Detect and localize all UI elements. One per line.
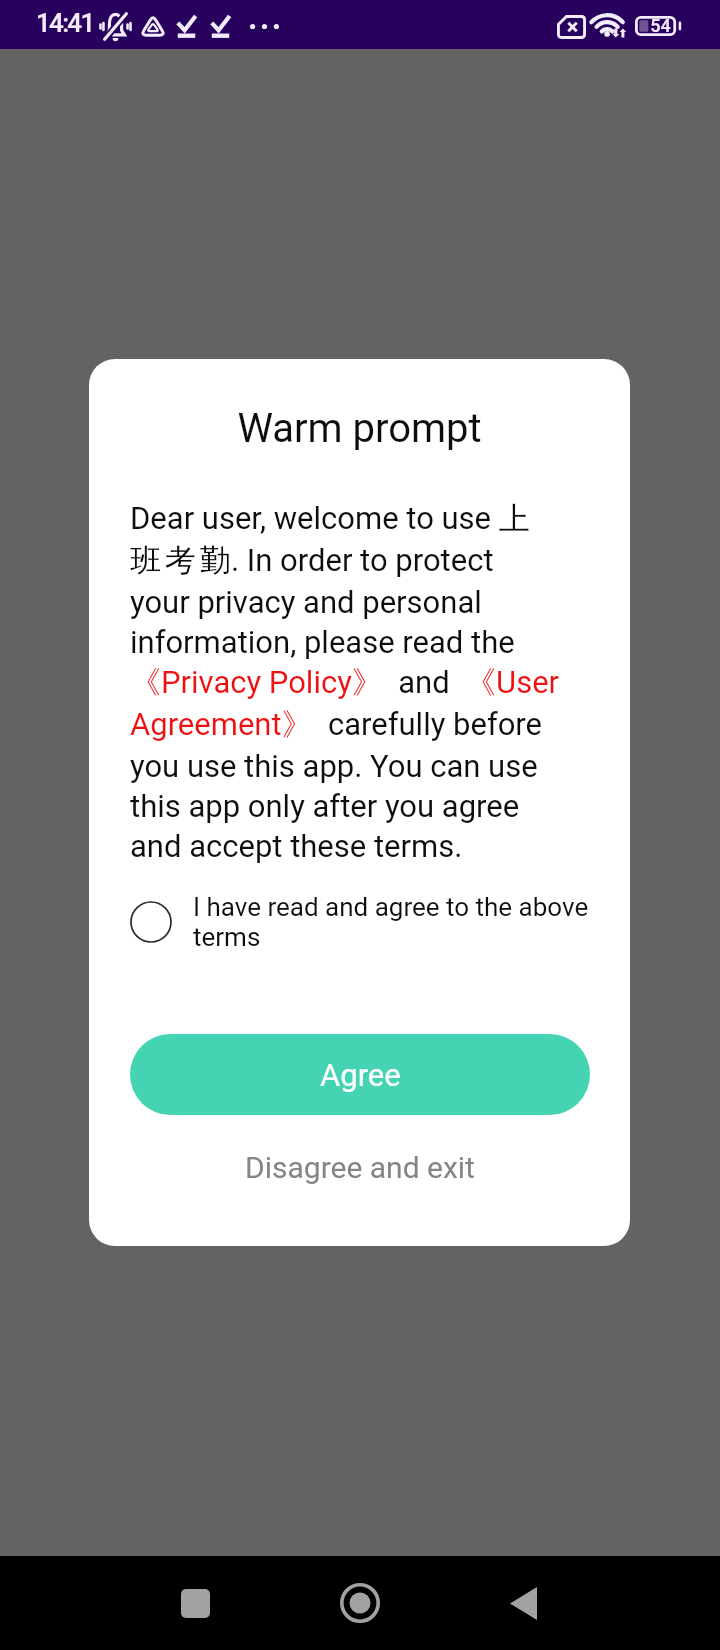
staticText: Disagree and exit bbox=[245, 1150, 475, 1185]
staticText: I have read and agree to the above terms bbox=[193, 892, 600, 952]
button[interactable]: I have read and agree to the above terms bbox=[130, 886, 600, 958]
button[interactable]: Agree bbox=[130, 1034, 590, 1115]
button[interactable]: Disagree and exit bbox=[89, 1129, 630, 1205]
staticText: Agree bbox=[320, 1057, 401, 1093]
staticText: Dear user, welcome to use 上班考勤. In order… bbox=[130, 499, 560, 864]
staticText: Warm prompt bbox=[89, 405, 630, 452]
button[interactable]: Home bbox=[310, 1556, 410, 1650]
staticText: 54 bbox=[644, 15, 677, 36]
button[interactable]: Recent apps bbox=[145, 1556, 245, 1650]
staticText: 14:41 bbox=[36, 8, 94, 38]
button[interactable]: Back bbox=[473, 1556, 573, 1650]
